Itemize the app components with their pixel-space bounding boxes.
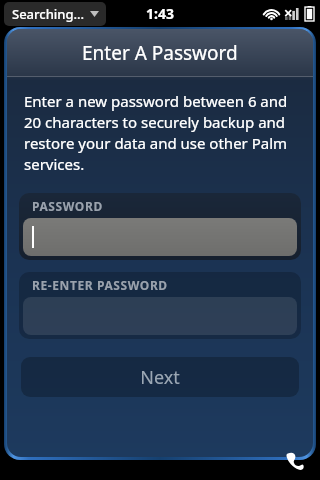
staticText: Next — [140, 365, 180, 390]
staticText: Searching... — [12, 5, 85, 23]
staticText: Enter A Password — [82, 40, 238, 66]
staticText: PASSWORD — [32, 198, 103, 214]
staticText: Enter a new password between 6 and 20 ch… — [24, 91, 296, 175]
button[interactable]: PASSWORD — [19, 193, 301, 260]
button[interactable]: RE-ENTER PASSWORD — [19, 272, 301, 339]
button[interactable]: Phone — [282, 448, 308, 474]
staticText: 1:43 — [146, 4, 174, 23]
staticText: RE-ENTER PASSWORD — [32, 277, 168, 293]
button[interactable]: Searching... — [4, 2, 106, 26]
button[interactable]: Next — [21, 357, 299, 397]
